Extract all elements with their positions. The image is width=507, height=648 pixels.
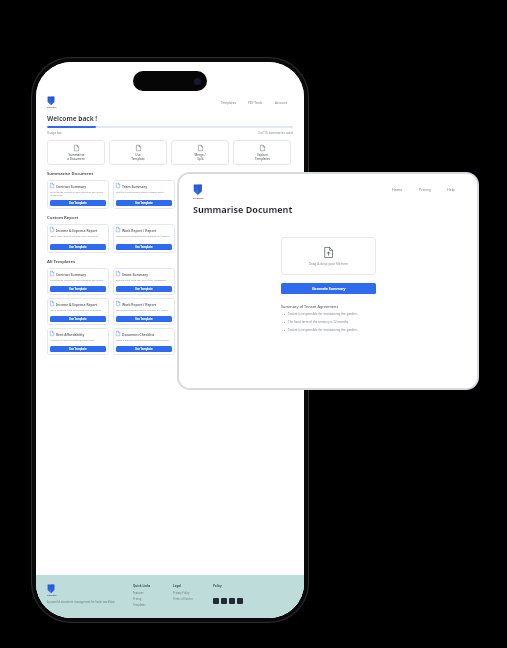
button[interactable]: Help [439, 184, 463, 195]
staticText: Quickly summarise a team's weekly work. [116, 190, 165, 200]
staticText: Tenant is responsible for maintaining th… [288, 312, 358, 316]
staticText: Template [131, 157, 145, 161]
button[interactable]: Rent Affordability [47, 328, 109, 355]
staticText: Welcome back ! [47, 114, 98, 123]
staticText: Use Template [135, 317, 153, 321]
staticText: The fixed term of the tenancy is 12 mont… [288, 320, 350, 324]
staticText: Use Template [135, 245, 153, 249]
staticText: Work Report / Report [122, 302, 157, 306]
button[interactable]: PDF Tools [242, 98, 269, 108]
staticText: Get a detailed look at income and spendi… [50, 308, 102, 316]
staticText: Use Template [135, 347, 153, 351]
button[interactable]: Use Template [50, 286, 106, 292]
staticText: Use [135, 153, 141, 157]
staticText: Privacy Policy [173, 591, 190, 595]
button[interactable]: Social link [237, 598, 243, 604]
button[interactable]: Use Template [116, 286, 172, 292]
button[interactable]: Merge / [171, 140, 229, 165]
staticText: Work Report / Report [122, 228, 157, 232]
staticText: Smart Summary [122, 272, 148, 276]
button[interactable]: Use Template [116, 244, 172, 250]
staticText: Features [133, 591, 144, 595]
button[interactable]: Summarise [47, 140, 105, 165]
staticText: Quick Links [133, 584, 151, 588]
staticText: Summarise contracts and highlight key te… [50, 190, 106, 200]
staticText: ClearDoc [47, 594, 57, 597]
staticText: Home [392, 187, 403, 192]
button[interactable]: Privacy Policy [173, 591, 190, 595]
staticText: Policy Digest [188, 184, 209, 188]
button[interactable]: Templates [133, 603, 146, 607]
button[interactable]: Home [384, 184, 411, 195]
button[interactable]: Drag and drop or choose file here [281, 237, 376, 275]
staticText: Usage bar [47, 131, 62, 135]
button[interactable]: Generate Summary [281, 283, 376, 294]
button[interactable]: Income & Expense Report [47, 224, 109, 253]
button[interactable]: Team Summary [113, 180, 175, 209]
button[interactable]: Social link [213, 598, 219, 604]
button[interactable]: Pricing [411, 184, 439, 195]
button[interactable]: Use Template [50, 316, 106, 322]
button[interactable]: Social link [221, 598, 227, 604]
staticText: Condense long policies into key points. [182, 190, 228, 200]
staticText: Use Template [69, 245, 87, 249]
button[interactable]: Templates [215, 98, 242, 108]
staticText: Account [275, 101, 287, 105]
staticText: Templates [221, 101, 236, 105]
button[interactable]: Work Report / Report [113, 224, 175, 253]
button[interactable]: Features [133, 591, 144, 595]
button[interactable]: Contract Summary [47, 268, 109, 295]
button[interactable]: Document Checklist [113, 328, 175, 355]
button[interactable]: Work Report / Report [113, 298, 175, 325]
button[interactable]: Terms of Service [173, 597, 193, 601]
button[interactable]: Social link [229, 598, 235, 604]
button[interactable]: Account [269, 98, 293, 108]
staticText: Quickly turn long text into short takeaw… [116, 278, 168, 286]
button[interactable]: Smart Summary [113, 268, 175, 295]
staticText: Summarise contracts and highlight key te… [50, 278, 104, 286]
button[interactable]: Explore [233, 140, 291, 165]
staticText: Terms of Service [173, 597, 193, 601]
button[interactable]: Use Template [116, 346, 172, 352]
button[interactable]: Income & Expense Report [47, 298, 109, 325]
button[interactable]: Contract Summary [47, 180, 109, 209]
staticText: Assess if a rental is affordable for you… [50, 338, 95, 346]
staticText: Legal [173, 584, 182, 588]
staticText: Use Template [69, 347, 87, 351]
button[interactable]: Use Template [116, 316, 172, 322]
staticText: Summary of Tenant Agreement [281, 304, 338, 309]
staticText: A powerful document management for faste… [47, 600, 115, 604]
button[interactable]: Use Template [50, 244, 106, 250]
button[interactable]: Use Template [50, 200, 106, 206]
staticText: Income & Expense Report [56, 302, 98, 306]
button[interactable]: Use Template [116, 200, 172, 206]
staticText: Use Template [135, 201, 153, 205]
button[interactable]: Pricing [133, 597, 142, 601]
staticText: Help [447, 187, 455, 192]
button[interactable]: Use Template [50, 346, 106, 352]
staticText: Pricing [419, 187, 431, 192]
staticText: Build a step-by-step checklist for appli… [116, 338, 170, 346]
staticText: a Document [67, 157, 85, 161]
staticText: Generate formatted work updates for repo… [116, 234, 171, 244]
button[interactable]: Policy Digest [179, 180, 241, 209]
button[interactable]: Use [109, 140, 167, 165]
